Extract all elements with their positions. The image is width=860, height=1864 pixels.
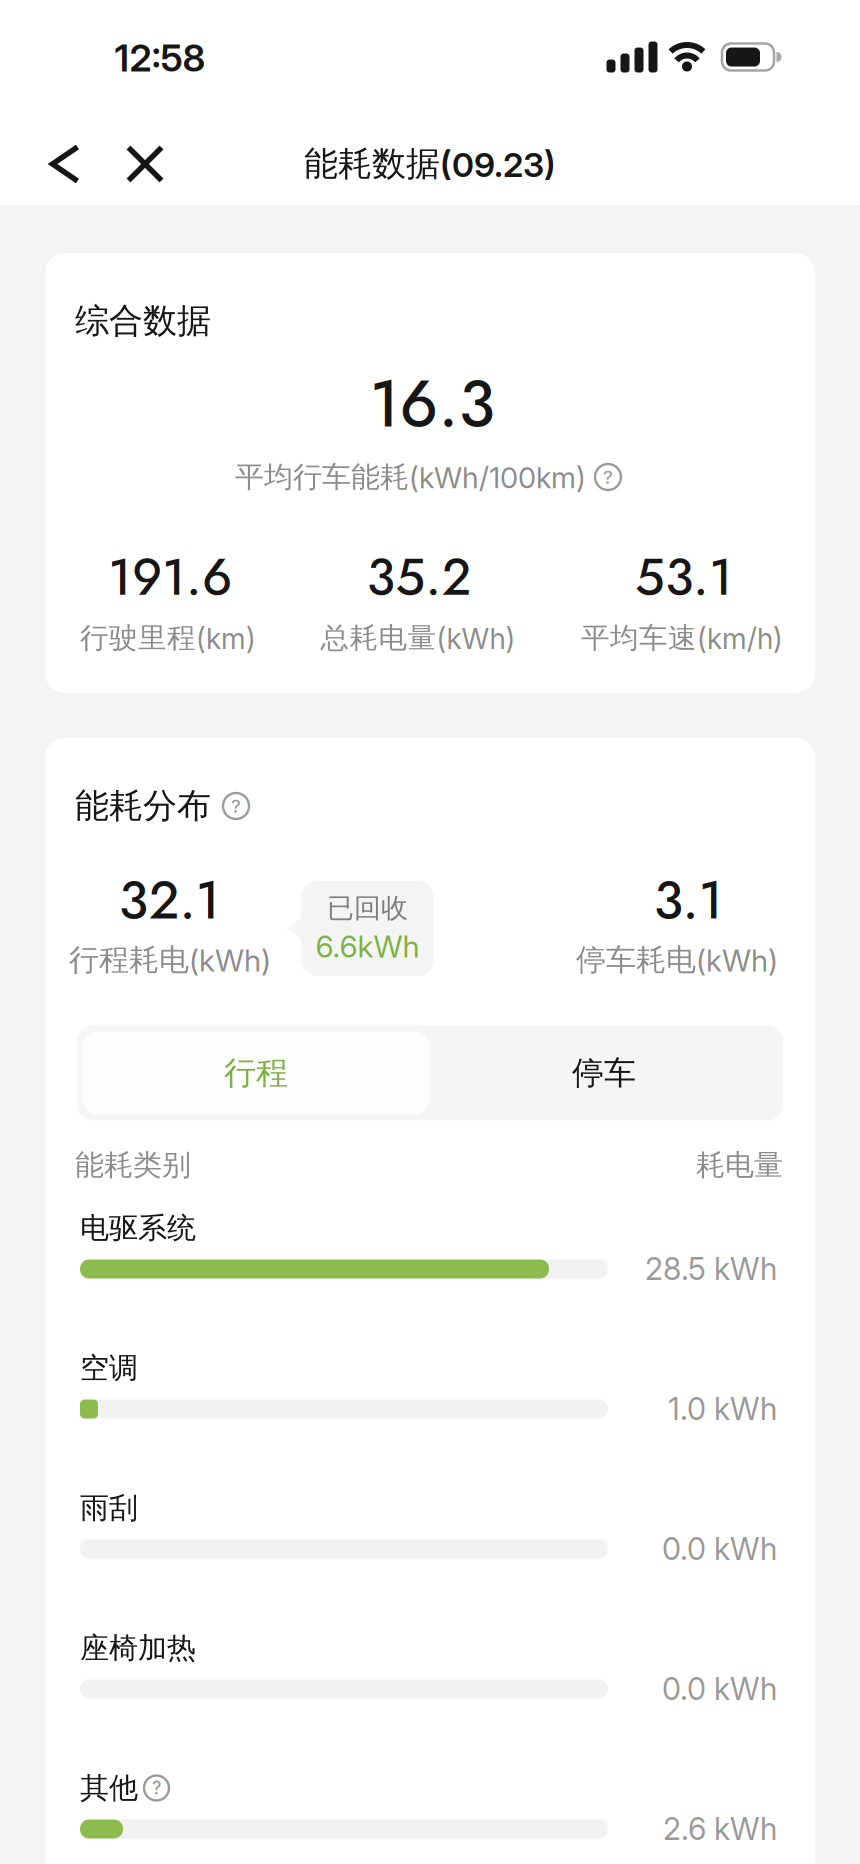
staticText: 总耗电量(kWh) [320,620,515,656]
staticText: 32.1 [118,862,219,938]
staticText: 0.0 kWh [662,1670,777,1707]
staticText: 2.6 kWh [663,1810,777,1847]
staticText: 能耗分布 [75,785,211,827]
staticText: 其他 [80,1770,138,1806]
staticText: 电驱系统 [80,1210,196,1246]
staticText: 行程耗电(kWh) [69,941,271,979]
staticText: 16.3 [369,357,494,451]
staticText: ? [231,795,241,817]
button[interactable]: 说明 [595,464,621,490]
staticText: 平均行车能耗(kWh/100km) [235,459,586,495]
staticText: 行驶里程(km) [80,620,256,656]
button[interactable]: 说明 [144,1775,169,1800]
staticText: 53.1 [635,540,733,614]
staticText: 耗电量 [696,1147,783,1183]
button[interactable]: 说明 [223,793,249,819]
staticText: 座椅加热 [80,1630,196,1666]
staticText: 能耗数据(09.23) [304,143,556,185]
staticText: 空调 [80,1350,138,1386]
button[interactable]: 返回 [37,132,92,196]
staticText: 12:58 [114,35,205,81]
button[interactable]: 停车 [431,1031,777,1114]
staticText: 35.2 [366,540,471,614]
staticText: 28.5 kWh [645,1250,777,1287]
button[interactable]: 行程 [83,1031,429,1114]
staticText: 0.0 kWh [662,1530,777,1567]
staticText: 停车耗电(kWh) [576,941,778,979]
staticText: 综合数据 [75,300,211,342]
staticText: 停车 [572,1053,636,1093]
staticText: 3.1 [653,862,722,938]
staticText: 已回收 [327,891,408,925]
staticText: 平均车速(km/h) [581,620,783,656]
staticText: 1.0 kWh [668,1390,777,1427]
staticText: 能耗类别 [75,1147,191,1183]
staticText: 雨刮 [80,1490,138,1526]
button[interactable]: 关闭 [113,132,176,195]
staticText: 6.6kWh [315,928,419,965]
staticText: ? [152,1777,161,1799]
staticText: ? [603,466,613,488]
staticText: 行程 [224,1053,288,1093]
staticText: 191.6 [108,540,232,614]
